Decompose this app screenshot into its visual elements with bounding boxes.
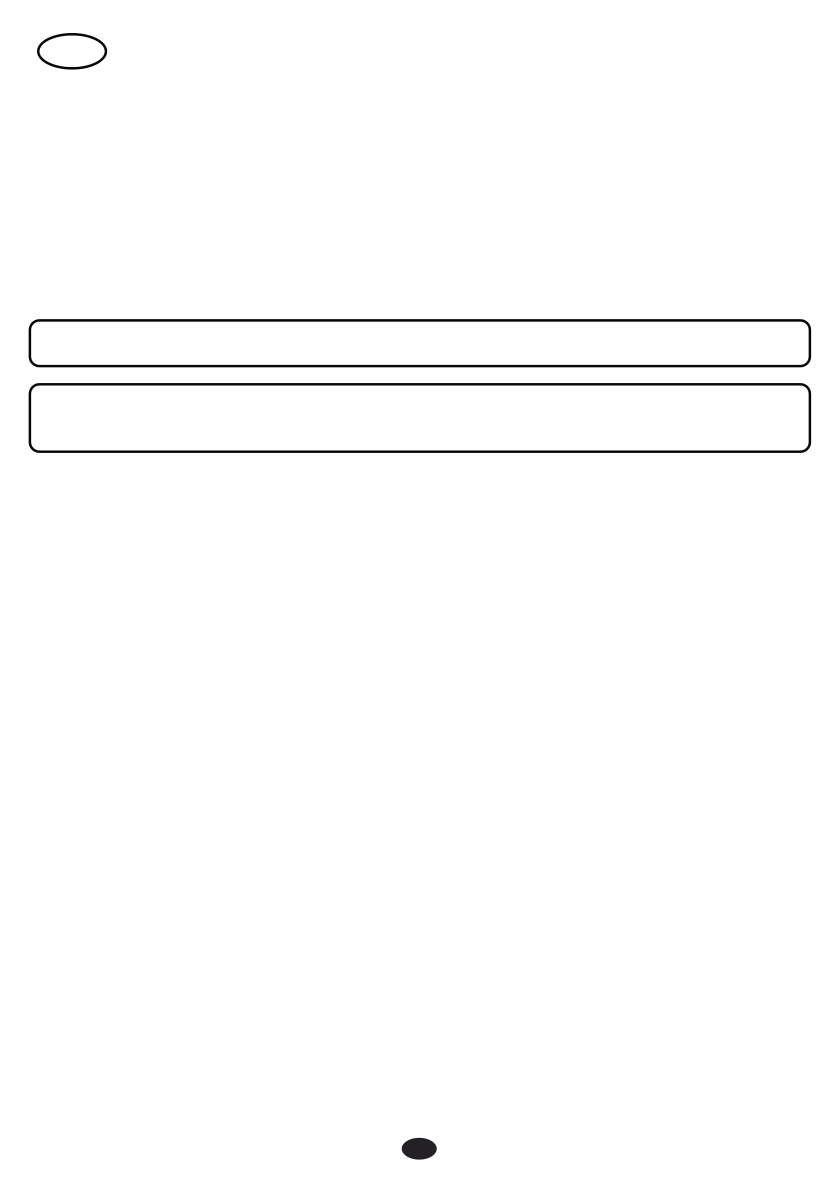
button[interactable]: Field two [30,384,810,452]
button[interactable]: Profile [38,34,106,68]
button[interactable]: Field one [30,320,810,366]
